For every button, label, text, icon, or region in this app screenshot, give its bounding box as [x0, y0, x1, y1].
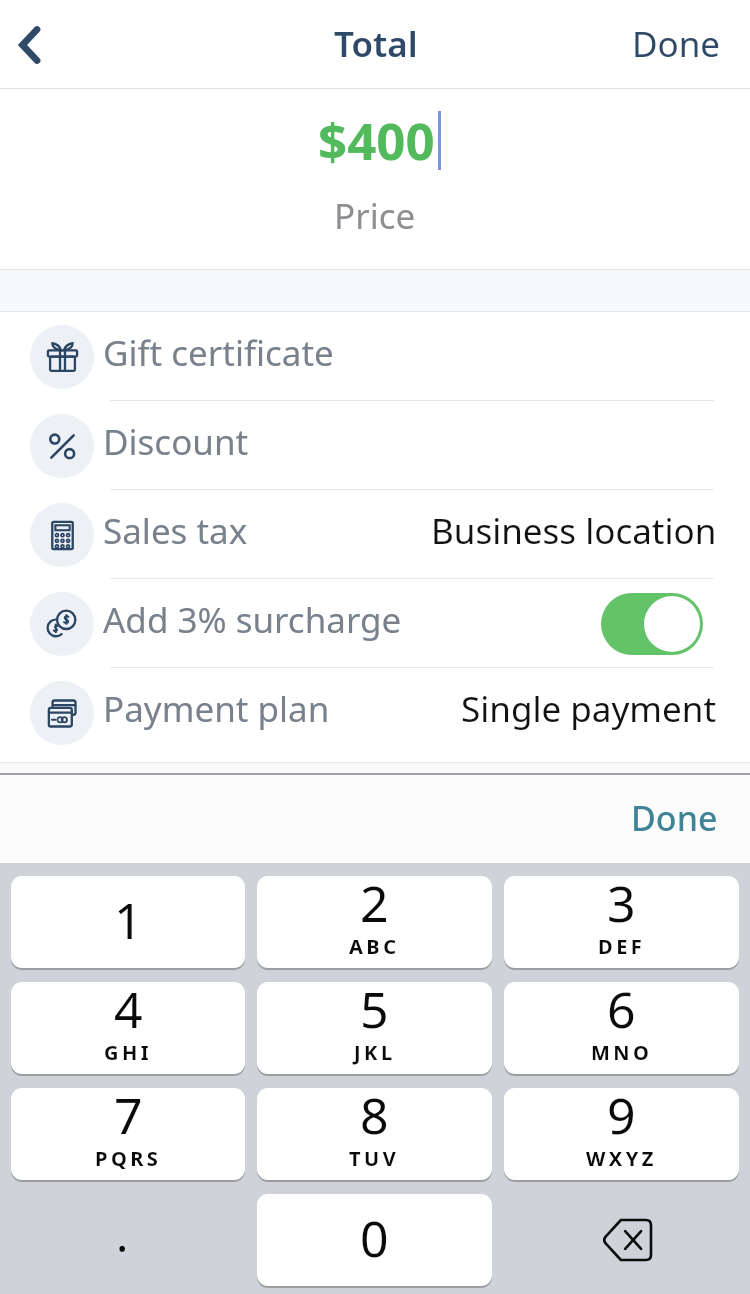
staticText: TUV [349, 1145, 400, 1172]
staticText: DEF [598, 933, 646, 960]
staticText: Total [334, 20, 418, 68]
staticText: 8 [360, 1088, 389, 1149]
button[interactable]: Done [597, 0, 750, 89]
staticText: Add 3% surcharge [103, 596, 402, 644]
staticText: . [116, 1203, 129, 1266]
staticText: 4 [114, 982, 143, 1043]
staticText: PQRS [95, 1145, 162, 1172]
staticText: 6 [607, 982, 636, 1043]
staticText: Done [632, 20, 721, 68]
button[interactable]: Payment plan [0, 668, 750, 757]
button[interactable]: Sales tax [0, 490, 750, 579]
staticText: $400 [318, 105, 435, 174]
staticText: ABC [349, 933, 400, 960]
button[interactable]: 0 [257, 1194, 492, 1286]
staticText: Done [631, 795, 718, 841]
button[interactable]: 9 [504, 1088, 739, 1180]
staticText: Gift certificate [103, 329, 334, 377]
staticText: Business location [431, 507, 717, 555]
button[interactable]: 6 [504, 982, 739, 1074]
button[interactable]: 1 [11, 876, 245, 968]
staticText: 0 [360, 1204, 389, 1272]
staticText: 1 [114, 886, 143, 954]
button[interactable]: 8 [257, 1088, 492, 1180]
button[interactable]: Add 3% surcharge toggle, on [601, 593, 703, 655]
button[interactable]: 4 [11, 982, 245, 1074]
staticText: 5 [360, 982, 389, 1043]
staticText: Single payment [461, 685, 717, 733]
button[interactable]: Decimal point [11, 1194, 245, 1286]
button[interactable]: Add 3% surcharge [0, 579, 750, 668]
staticText: 2 [360, 876, 389, 937]
staticText: GHI [104, 1039, 153, 1066]
staticText: 9 [607, 1088, 636, 1149]
staticText: Discount [103, 418, 249, 466]
button[interactable]: Gift certificate [0, 312, 750, 401]
staticText: 3 [607, 876, 636, 937]
staticText: MNO [591, 1039, 653, 1066]
staticText: WXYZ [586, 1145, 657, 1172]
staticText: Price [334, 192, 416, 240]
button[interactable]: 3 [504, 876, 739, 968]
staticText: Payment plan [103, 685, 330, 733]
button[interactable]: 2 [257, 876, 492, 968]
staticText: JKL [354, 1039, 396, 1066]
staticText: 7 [114, 1088, 143, 1149]
button[interactable]: Backspace [504, 1194, 739, 1286]
button[interactable]: 7 [11, 1088, 245, 1180]
staticText: Sales tax [103, 507, 248, 555]
button[interactable]: Done [591, 775, 750, 863]
button[interactable]: Back [0, 13, 64, 77]
button[interactable]: Discount [0, 401, 750, 490]
button[interactable]: 5 [257, 982, 492, 1074]
